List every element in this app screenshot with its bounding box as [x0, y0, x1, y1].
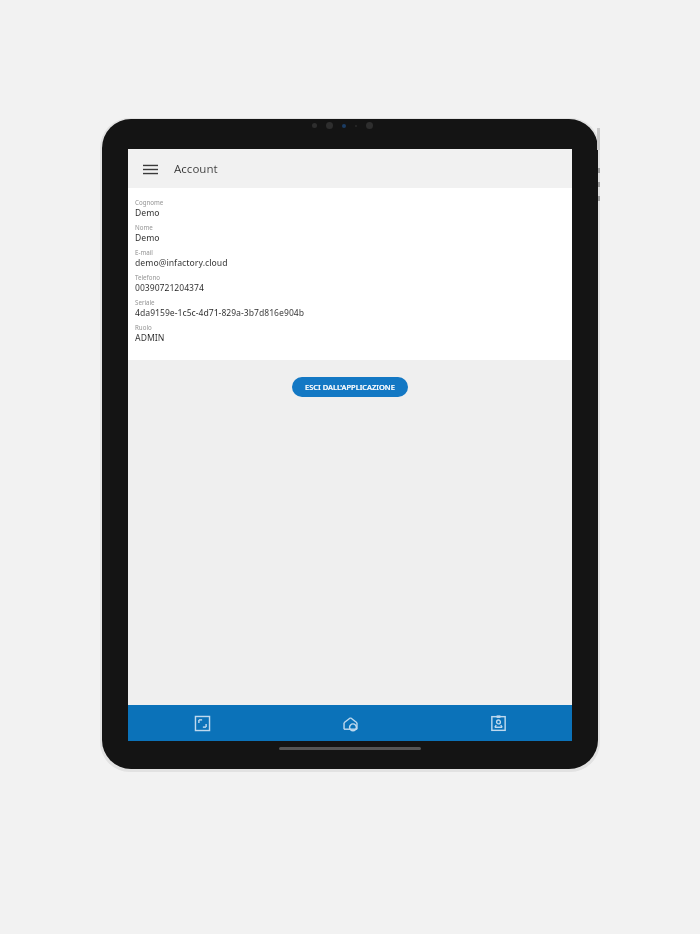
staticText: Telefono — [135, 273, 161, 281]
staticText: Nome — [135, 223, 153, 231]
staticText: Demo — [135, 232, 160, 244]
staticText: Demo — [135, 207, 160, 219]
staticText: Ruolo — [135, 323, 152, 331]
staticText: Seriale — [135, 298, 155, 306]
staticText: ADMIN — [135, 332, 165, 344]
staticText: 00390721204374 — [135, 282, 204, 294]
staticText: E-mail — [135, 248, 153, 256]
button[interactable]: Home — [276, 705, 424, 741]
button[interactable]: ESCI DALL'APPLICAZIONE — [292, 377, 408, 397]
button[interactable]: Scan — [128, 705, 276, 741]
button[interactable]: Badge — [424, 705, 572, 741]
staticText: Cognome — [135, 198, 164, 206]
staticText: Account — [174, 161, 218, 177]
staticText: demo@infactory.cloud — [135, 257, 228, 269]
staticText: 4da9159e-1c5c-4d71-829a-3b7d816e904b — [135, 307, 305, 319]
staticText: ESCI DALL'APPLICAZIONE — [305, 382, 395, 392]
button[interactable]: Menu — [136, 155, 164, 183]
